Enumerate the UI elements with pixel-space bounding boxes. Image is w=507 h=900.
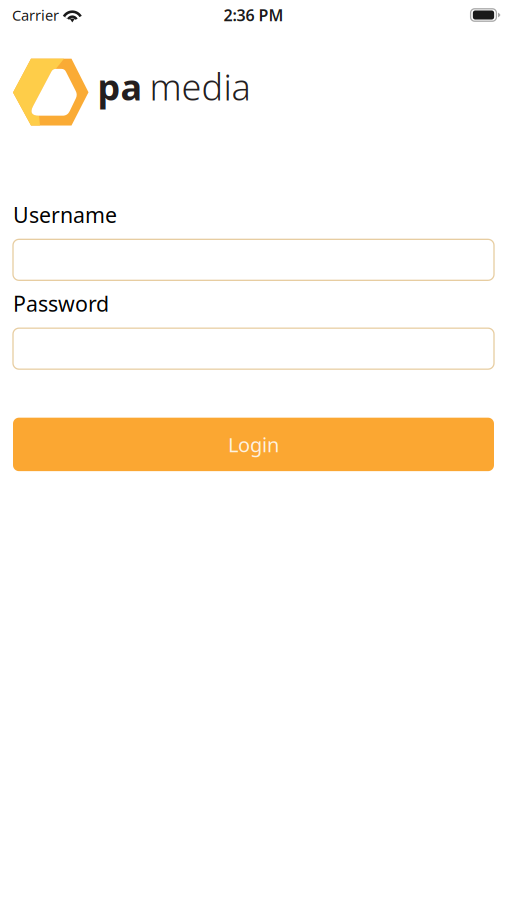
staticText: Carrier xyxy=(12,5,59,25)
staticText: pa xyxy=(97,63,142,110)
button[interactable]: Password xyxy=(13,328,494,369)
button[interactable]: Login xyxy=(13,418,494,471)
staticText: 2:36 PM xyxy=(223,4,283,26)
staticText: media xyxy=(149,63,250,110)
staticText: Password xyxy=(13,289,109,318)
staticText: Username xyxy=(13,200,117,229)
staticText: Login xyxy=(228,431,279,458)
button[interactable]: Username xyxy=(13,239,494,280)
